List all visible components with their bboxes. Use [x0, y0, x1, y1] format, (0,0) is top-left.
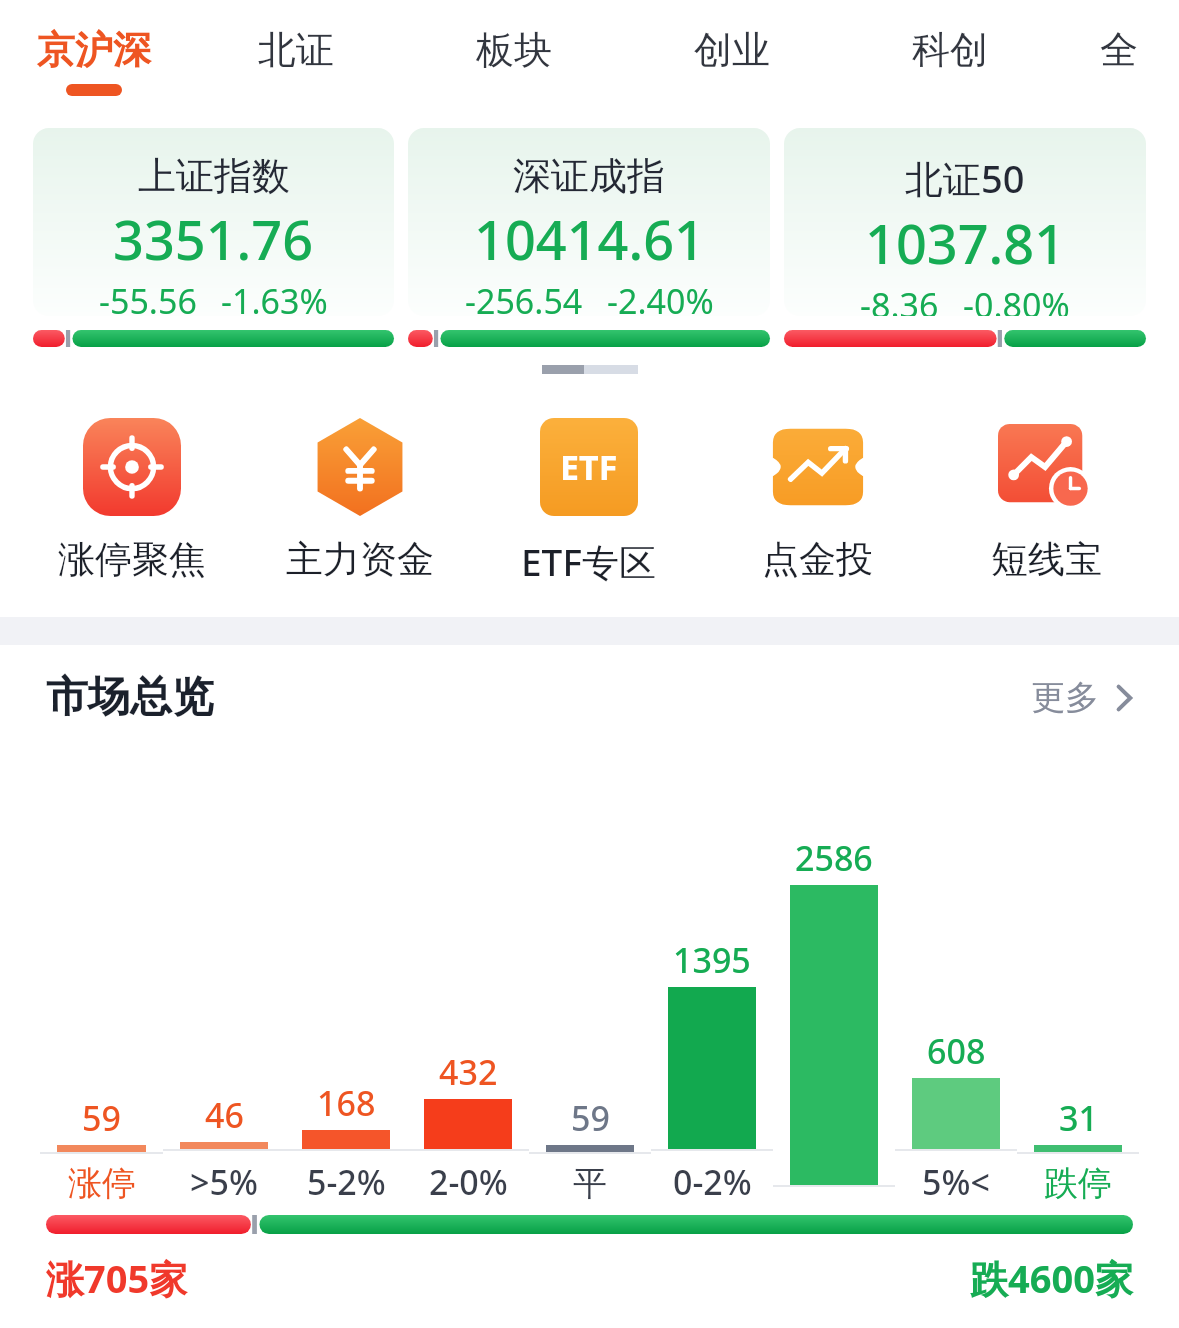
staticText: 板块 — [476, 26, 552, 74]
staticText: -8.36 — [860, 282, 939, 316]
button[interactable]: 涨停聚焦 — [18, 418, 246, 583]
button[interactable]: 更多 — [1031, 676, 1133, 719]
staticText: 主力资金 — [286, 536, 434, 583]
button[interactable]: 上证指数 — [33, 128, 394, 347]
staticText: -0.80% — [963, 282, 1070, 316]
staticText: 创业 — [694, 26, 770, 74]
staticText: ETF — [560, 444, 618, 490]
staticText: 京沪深 — [37, 26, 151, 74]
button[interactable]: 59 — [529, 973, 651, 1205]
staticText: 涨705家 — [46, 1252, 188, 1304]
button[interactable]: ETF专区 — [474, 418, 703, 587]
button[interactable]: 2586 — [773, 835, 895, 1205]
staticText: 2-0% — [429, 1159, 508, 1205]
button[interactable]: 京沪深 — [0, 0, 187, 112]
button[interactable]: 432 — [407, 945, 529, 1205]
button[interactable]: 短线宝 — [932, 418, 1161, 583]
staticText: -55.56 — [99, 278, 197, 316]
staticText: 10414.61 — [474, 202, 705, 276]
staticText: 短线宝 — [991, 536, 1102, 583]
button[interactable]: 608 — [895, 932, 1017, 1205]
staticText: >5% — [190, 1159, 258, 1205]
staticText: 市场总览 — [46, 671, 214, 724]
button[interactable]: 31 — [1017, 973, 1139, 1205]
button[interactable]: 主力资金 — [246, 418, 474, 583]
staticText: -2.40% — [607, 278, 714, 316]
button[interactable]: 1395 — [651, 879, 773, 1205]
staticText: 涨停聚焦 — [58, 536, 206, 583]
staticText: 46 — [205, 1092, 244, 1138]
staticText: 2586 — [795, 835, 873, 881]
staticText: 更多 — [1031, 676, 1099, 719]
staticText: -1.63% — [221, 278, 328, 316]
staticText: 5-2% — [307, 1159, 386, 1205]
button[interactable]: 59 — [40, 973, 163, 1205]
button[interactable]: 168 — [285, 963, 407, 1205]
staticText: -256.54 — [465, 278, 583, 316]
staticText: 3351.76 — [113, 202, 314, 276]
staticText: 0-2% — [673, 1159, 752, 1205]
staticText: 北证 — [258, 26, 334, 74]
staticText: 点金投 — [762, 536, 873, 583]
staticText: 上证指数 — [138, 152, 290, 200]
staticText: ETF专区 — [521, 536, 656, 587]
button[interactable]: 深证成指 — [408, 128, 770, 347]
staticText: 59 — [571, 1095, 610, 1141]
staticText: 跌停 — [1044, 1162, 1112, 1205]
staticText: 平 — [573, 1162, 607, 1205]
staticText: 432 — [439, 1049, 498, 1095]
staticText: 全 — [1100, 26, 1138, 74]
button[interactable]: 板块 — [405, 0, 623, 112]
staticText: 1395 — [673, 937, 751, 983]
staticText: 涨停 — [68, 1162, 136, 1205]
staticText: 608 — [927, 1028, 986, 1074]
button[interactable]: 北证 — [187, 0, 405, 112]
button[interactable]: 创业 — [623, 0, 841, 112]
button[interactable]: 北证50 — [784, 128, 1146, 347]
staticText: 168 — [317, 1080, 376, 1126]
staticText: 深证成指 — [513, 152, 665, 200]
staticText: 科创 — [912, 26, 988, 74]
staticText: 31 — [1059, 1095, 1098, 1141]
button[interactable]: 全 — [1059, 0, 1179, 112]
button[interactable]: 46 — [163, 970, 285, 1205]
staticText: 跌4600家 — [970, 1252, 1133, 1304]
staticText: 5%< — [922, 1159, 990, 1205]
staticText: 1037.81 — [865, 206, 1066, 280]
staticText: 北证50 — [905, 152, 1025, 204]
button[interactable]: 科创 — [841, 0, 1059, 112]
button[interactable]: 点金投 — [703, 418, 932, 583]
staticText: 59 — [82, 1095, 121, 1141]
